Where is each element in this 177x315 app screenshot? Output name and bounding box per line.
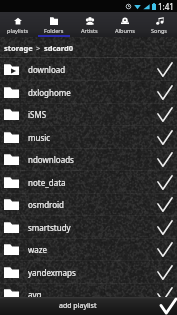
button[interactable]: Confirm selection — [160, 297, 177, 315]
staticText: playlists — [7, 27, 29, 35]
staticText: music — [28, 132, 157, 143]
button[interactable]: waze — [0, 238, 177, 261]
staticText: Albums — [115, 27, 135, 35]
staticText: 1:41 — [158, 1, 174, 12]
button[interactable]: add playlist — [0, 297, 156, 315]
button[interactable]: Albums — [107, 12, 142, 37]
button[interactable]: avg — [0, 283, 177, 306]
staticText: avg — [28, 289, 157, 300]
button[interactable]: yandexmaps — [0, 261, 177, 284]
staticText: sdcard0 — [44, 43, 74, 53]
staticText: osmdroid — [28, 199, 157, 210]
staticText: dxloghome — [28, 87, 157, 98]
button[interactable]: dxloghome — [0, 81, 177, 104]
staticText: download — [28, 64, 157, 75]
staticText: note_data — [28, 177, 157, 188]
staticText: storage — [4, 43, 33, 53]
button[interactable]: smartstudy — [0, 216, 177, 239]
staticText: Artists — [81, 27, 98, 35]
staticText: > — [36, 43, 41, 53]
button[interactable]: playlists — [0, 12, 36, 37]
button[interactable]: Songs — [142, 12, 177, 37]
staticText: add playlist — [59, 301, 97, 311]
button[interactable]: Artists — [72, 12, 107, 37]
button[interactable]: ndownloads — [0, 148, 177, 171]
button[interactable]: music — [0, 126, 177, 149]
staticText: Folders — [44, 27, 64, 35]
staticText: smartstudy — [28, 222, 157, 233]
button[interactable]: iSMS — [0, 103, 177, 126]
staticText: waze — [28, 244, 157, 255]
button[interactable]: Folders — [36, 12, 72, 37]
staticText: iSMS — [28, 109, 157, 120]
button[interactable]: download — [0, 58, 177, 81]
staticText: yandexmaps — [28, 267, 157, 278]
staticText: Songs — [151, 27, 168, 35]
button[interactable]: osmdroid — [0, 193, 177, 216]
button[interactable]: note_data — [0, 171, 177, 194]
staticText: ndownloads — [28, 154, 157, 165]
